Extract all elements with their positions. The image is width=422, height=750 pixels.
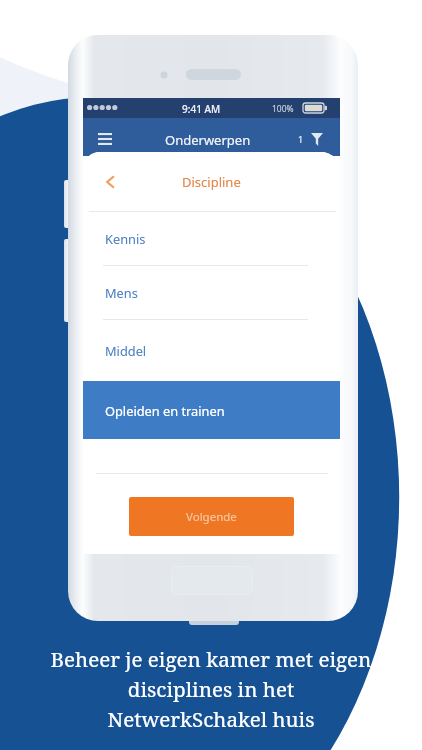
- button[interactable]: Kennis: [83, 212, 340, 265]
- staticText: Beheer je eigen kamer met eigen discipli…: [0, 645, 422, 733]
- button[interactable]: Volgende: [129, 497, 294, 536]
- staticText: Onderwerpen: [165, 131, 251, 149]
- staticText: Middel: [105, 342, 147, 359]
- button[interactable]: Middel: [83, 320, 340, 381]
- staticText: Kennis: [105, 230, 146, 247]
- staticText: Volgende: [186, 509, 237, 525]
- staticText: Opleiden en trainen: [105, 402, 225, 419]
- staticText: Mens: [105, 284, 138, 301]
- button[interactable]: Mens: [83, 266, 340, 319]
- staticText: Discipline: [182, 173, 241, 191]
- staticText: 100%: [272, 103, 294, 115]
- button[interactable]: Filter: [305, 129, 329, 149]
- button[interactable]: Opleiden en trainen: [83, 381, 340, 439]
- staticText: 9:41 AM: [182, 102, 221, 116]
- button[interactable]: Menu: [90, 126, 120, 152]
- button[interactable]: Back: [97, 169, 123, 195]
- staticText: 1: [298, 133, 304, 145]
